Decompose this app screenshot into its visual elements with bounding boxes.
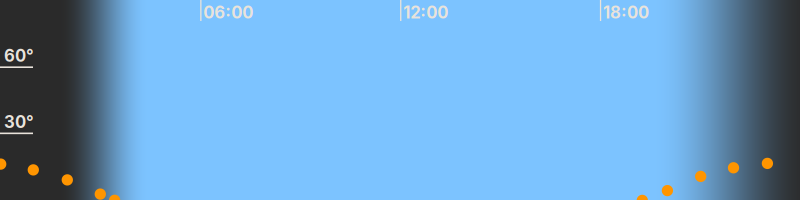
staticText: 60°	[4, 46, 34, 66]
staticText: 18:00	[603, 2, 649, 22]
staticText: 06:00	[203, 2, 253, 22]
staticText: 12:00	[403, 2, 448, 22]
staticText: 30°	[4, 112, 34, 132]
